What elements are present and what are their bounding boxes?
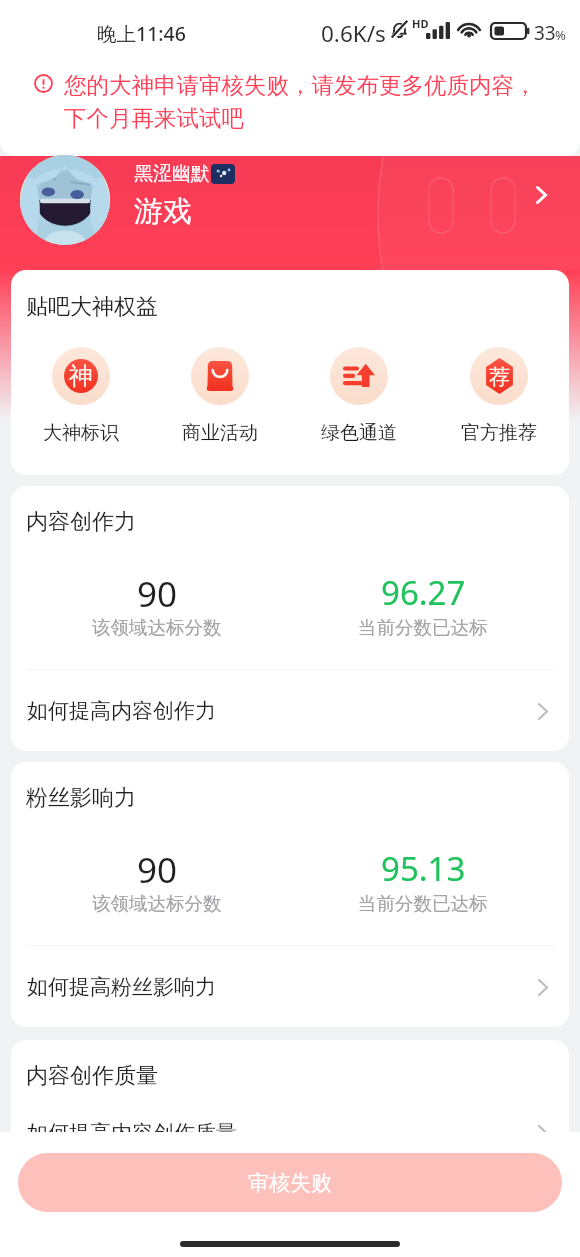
staticText: 当前分数已达标 [358,892,488,915]
staticText: 95.13 [381,846,466,891]
staticText: 如何提高内容创作质量 [27,1120,237,1146]
staticText: 90 [137,846,178,894]
staticText: 内容创作质量 [26,1062,158,1090]
staticText: 官方推荐 [461,421,537,445]
staticText: 当前分数已达标 [358,616,488,639]
other: 查看详情 [536,186,547,204]
staticText: 粉丝影响力 [26,784,136,812]
staticText: 大神标识 [43,421,119,445]
button[interactable]: 如何提高内容创作质量 [11,1092,569,1170]
button[interactable]: 神 [11,347,150,445]
button[interactable]: 荐 [429,347,569,445]
staticText: HD [412,16,429,31]
staticText: 神 [69,361,93,391]
staticText: 33 [534,20,556,46]
staticText: 该领域达标分数 [92,616,222,639]
button[interactable]: 绿色通道 [289,347,429,445]
button[interactable]: 如何提高内容创作力 [11,670,569,751]
button[interactable]: 商业活动 [150,347,289,445]
staticText: 游戏 [134,193,192,230]
staticText: 荐 [489,364,510,390]
button[interactable]: 审核失败 [18,1153,562,1212]
staticText: 黑涩幽默 [134,162,210,186]
staticText: % [555,26,566,44]
button[interactable]: 如何提高粉丝影响力 [11,946,569,1027]
staticText: 晚上11:46 [97,20,186,47]
staticText: 内容创作力 [26,508,136,536]
staticText: 0.6K/s [321,18,386,49]
button[interactable]: 黑涩幽默 [0,156,580,270]
staticText: 商业活动 [182,421,258,445]
staticText: 您的大神申请审核失败，请发布更多优质内容，下个月再来试试吧 [64,71,551,133]
staticText: 贴吧大神权益 [26,293,158,321]
staticText: 如何提高粉丝影响力 [27,974,216,1000]
staticText: 绿色通道 [321,421,397,445]
staticText: 审核失败 [248,1170,332,1196]
staticText: 如何提高内容创作力 [27,698,216,724]
staticText: 90 [137,570,178,618]
staticText: 96.27 [381,570,466,615]
staticText: 该领域达标分数 [92,892,222,915]
